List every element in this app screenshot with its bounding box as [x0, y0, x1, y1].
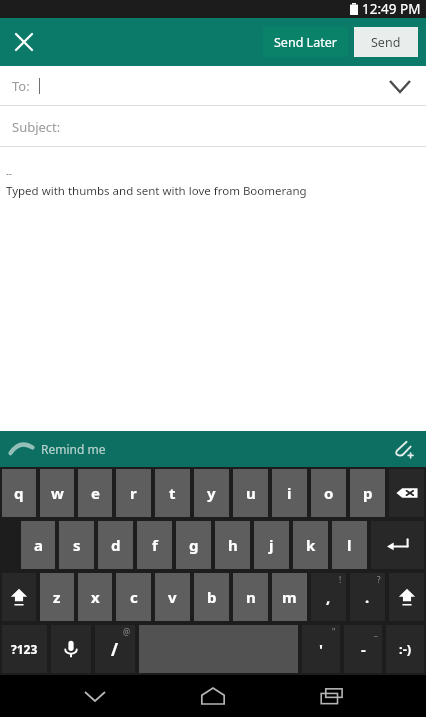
- staticText: h: [228, 535, 238, 555]
- button[interactable]: j: [254, 521, 289, 569]
- button[interactable]: To:: [0, 66, 426, 106]
- staticText: z: [53, 587, 61, 607]
- button[interactable]: b: [194, 573, 229, 621]
- button[interactable]: t: [155, 469, 190, 517]
- button[interactable]: v: [155, 573, 190, 621]
- staticText: e: [91, 483, 100, 503]
- button[interactable]: c: [116, 573, 151, 621]
- staticText: n: [246, 587, 256, 607]
- staticText: t: [169, 483, 176, 503]
- staticText: v: [168, 587, 177, 607]
- button[interactable]: h: [215, 521, 250, 569]
- staticText: u: [246, 483, 256, 503]
- staticText: ": [332, 626, 336, 637]
- staticText: _: [374, 626, 378, 637]
- button[interactable]: d: [98, 521, 133, 569]
- button[interactable]: :-): [386, 625, 424, 673]
- staticText: Subject:: [12, 118, 61, 136]
- button[interactable]: --: [0, 147, 426, 431]
- button[interactable]: -: [344, 625, 382, 673]
- button[interactable]: Shift: [389, 573, 424, 621]
- button[interactable]: q: [2, 469, 36, 517]
- button[interactable]: z: [40, 573, 74, 621]
- button[interactable]: Remind me: [10, 441, 106, 457]
- button[interactable]: w: [40, 469, 74, 517]
- button[interactable]: Home: [189, 675, 237, 717]
- staticText: o: [324, 483, 334, 503]
- staticText: ?123: [11, 641, 38, 657]
- staticText: x: [91, 587, 100, 607]
- button[interactable]: x: [78, 573, 112, 621]
- button[interactable]: Close: [4, 22, 44, 62]
- staticText: a: [34, 535, 43, 555]
- staticText: d: [111, 535, 121, 555]
- button[interactable]: m: [272, 573, 307, 621]
- staticText: /: [111, 638, 119, 661]
- staticText: m: [282, 587, 297, 607]
- button[interactable]: k: [293, 521, 328, 569]
- staticText: p: [363, 483, 373, 503]
- button[interactable]: .: [350, 573, 385, 621]
- button[interactable]: ?123: [2, 625, 47, 673]
- staticText: @: [123, 626, 131, 637]
- staticText: s: [73, 535, 81, 555]
- staticText: b: [207, 587, 217, 607]
- staticText: j: [269, 535, 274, 555]
- staticText: i: [287, 483, 292, 503]
- staticText: c: [130, 587, 138, 607]
- staticText: k: [306, 535, 316, 555]
- button[interactable]: Enter: [371, 521, 424, 569]
- staticText: q: [14, 483, 24, 503]
- staticText: r: [130, 483, 137, 503]
- button[interactable]: p: [350, 469, 385, 517]
- staticText: --: [6, 167, 12, 179]
- button[interactable]: Shift: [2, 573, 36, 621]
- button[interactable]: ': [302, 625, 340, 673]
- button[interactable]: a: [21, 521, 55, 569]
- staticText: g: [189, 535, 199, 555]
- staticText: !: [339, 574, 342, 585]
- staticText: Remind me: [41, 441, 106, 457]
- button[interactable]: /: [95, 625, 135, 673]
- staticText: 12:49 PM: [362, 0, 421, 18]
- button[interactable]: ,: [311, 573, 346, 621]
- button[interactable]: f: [137, 521, 172, 569]
- button[interactable]: Send: [354, 27, 418, 57]
- button[interactable]: Recent apps: [308, 675, 356, 717]
- button[interactable]: s: [59, 521, 94, 569]
- staticText: f: [152, 535, 158, 555]
- staticText: ,: [326, 587, 331, 607]
- button[interactable]: Voice input: [51, 625, 91, 673]
- staticText: .: [365, 587, 370, 607]
- button[interactable]: l: [332, 521, 367, 569]
- button[interactable]: Hide keyboard: [71, 675, 119, 717]
- button[interactable]: n: [233, 573, 268, 621]
- staticText: y: [207, 483, 216, 503]
- button[interactable]: g: [176, 521, 211, 569]
- staticText: Send: [371, 34, 401, 51]
- button[interactable]: Send Later: [263, 27, 348, 57]
- button[interactable]: y: [194, 469, 229, 517]
- button[interactable]: Delete: [389, 469, 424, 517]
- button[interactable]: Attach file: [388, 434, 418, 464]
- staticText: -: [361, 639, 366, 659]
- staticText: To:: [12, 77, 30, 95]
- staticText: Typed with thumbs and sent with love fro…: [6, 183, 307, 199]
- staticText: :-): [399, 640, 412, 658]
- staticText: l: [347, 535, 352, 555]
- button[interactable]: u: [233, 469, 268, 517]
- button[interactable]: r: [116, 469, 151, 517]
- button[interactable]: i: [272, 469, 307, 517]
- staticText: ?: [377, 574, 381, 585]
- button[interactable]: e: [78, 469, 112, 517]
- staticText: Send Later: [274, 34, 337, 51]
- button[interactable]: o: [311, 469, 346, 517]
- staticText: w: [51, 483, 64, 503]
- button[interactable]: Subject:: [0, 106, 426, 147]
- button[interactable]: Show more recipient fields: [382, 68, 418, 104]
- staticText: ': [319, 639, 323, 659]
